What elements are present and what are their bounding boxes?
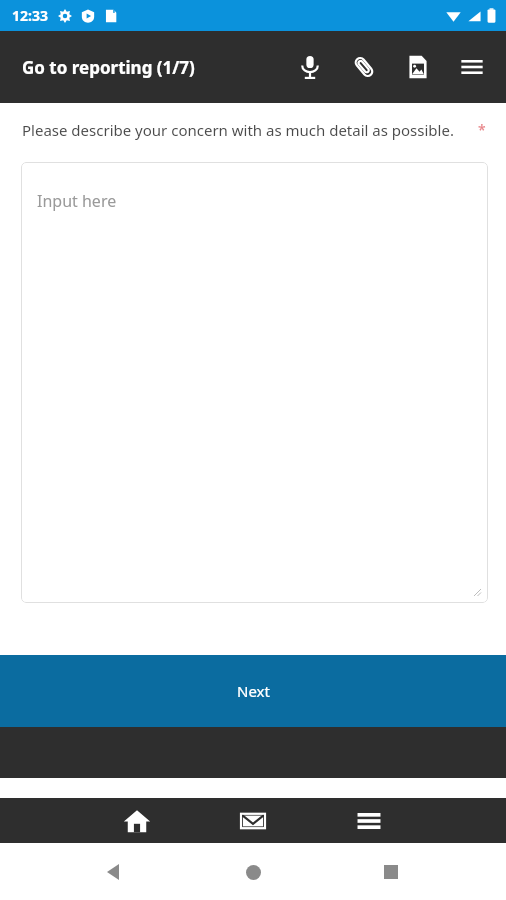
button[interactable]: Attach file <box>344 47 384 87</box>
button[interactable]: Go to reporting (1/7) <box>22 56 195 79</box>
staticText: Input here <box>37 190 117 212</box>
button[interactable]: Next <box>0 655 506 727</box>
staticText: Go to reporting (1/7) <box>22 56 195 79</box>
staticText: Please describe your concern with as muc… <box>22 120 454 140</box>
button[interactable]: Attach image <box>398 47 438 87</box>
button[interactable]: Home <box>115 798 159 843</box>
staticText: 12:33 <box>12 6 48 25</box>
button[interactable]: Recents <box>368 849 414 895</box>
button[interactable]: Input here <box>21 162 488 603</box>
staticText: Next <box>237 681 270 701</box>
button[interactable]: Home <box>230 849 276 895</box>
button[interactable]: Menu <box>347 798 391 843</box>
button[interactable]: Voice input <box>290 47 330 87</box>
staticText: * <box>478 120 486 139</box>
button[interactable]: Messages <box>231 798 275 843</box>
button[interactable]: Menu <box>452 47 492 87</box>
button[interactable]: Back <box>92 849 138 895</box>
